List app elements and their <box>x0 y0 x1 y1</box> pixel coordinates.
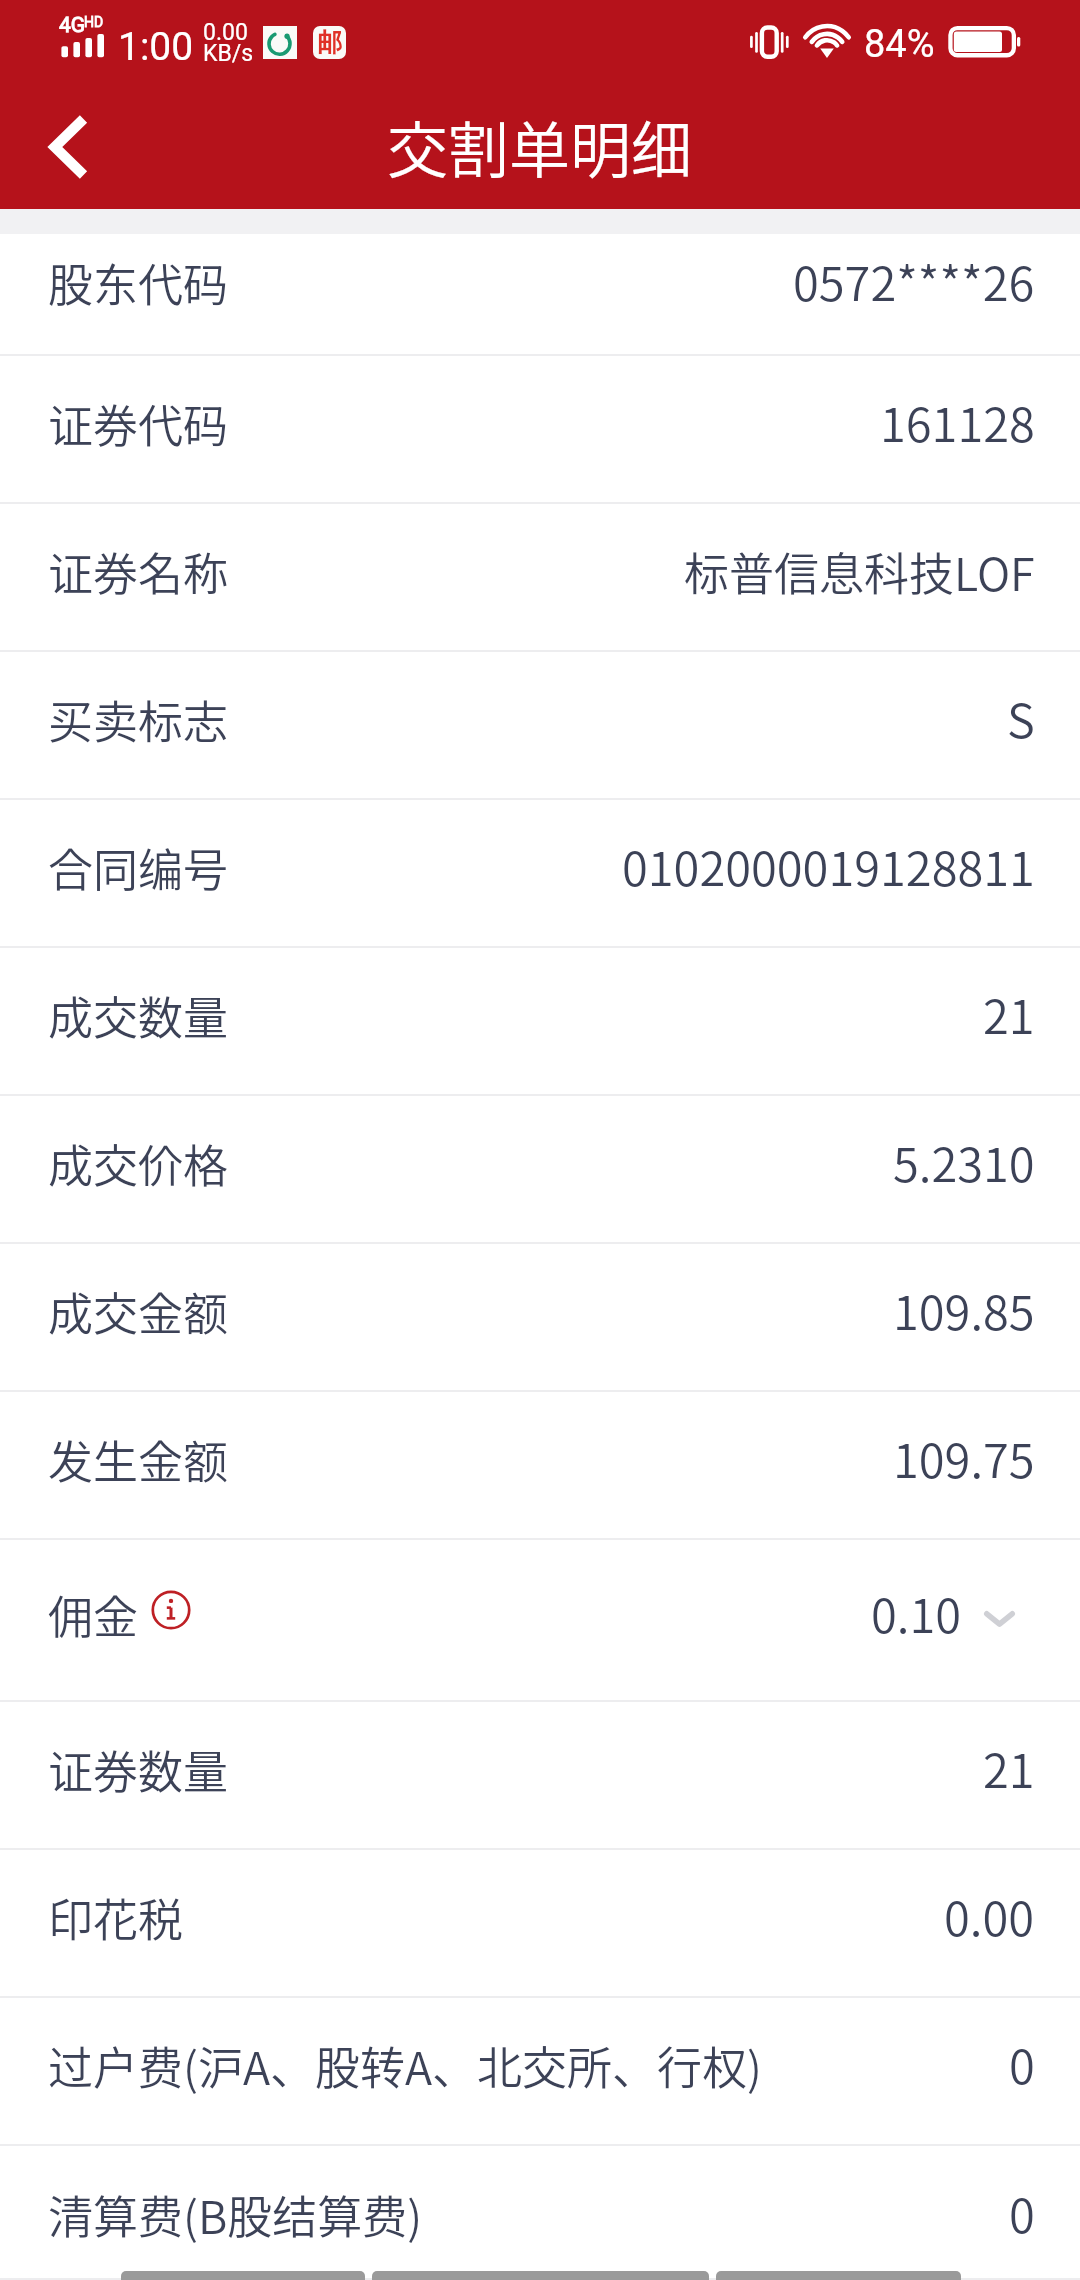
button[interactable]: 合同编号 <box>0 800 1080 948</box>
button[interactable]: 买卖标志 <box>0 652 1080 800</box>
staticText: 买卖标志 <box>48 687 229 752</box>
staticText: 清算费(B股结算费) <box>48 2182 423 2247</box>
button[interactable]: 成交金额 <box>0 1244 1080 1392</box>
staticText: 0.00 <box>944 1881 1035 1949</box>
button[interactable]: 发生金额 <box>0 1392 1080 1540</box>
staticText: KB/s <box>203 40 254 67</box>
button[interactable]: 证券名称 <box>0 504 1080 652</box>
staticText: 印花税 <box>48 1885 184 1950</box>
button[interactable]: 过户费(沪A、股转A、北交所、行权) <box>0 1998 1080 2146</box>
staticText: 161128 <box>880 387 1035 455</box>
staticText: 109.75 <box>893 1423 1035 1491</box>
staticText: 标普信息科技LOF <box>684 539 1035 604</box>
staticText: 成交价格 <box>48 1131 229 1196</box>
staticText: 21 <box>983 1733 1035 1801</box>
staticText: 交割单明细 <box>387 102 693 190</box>
staticText: 84% <box>864 22 935 67</box>
button[interactable]: 成交数量 <box>0 948 1080 1096</box>
staticText: 4G <box>59 13 86 38</box>
staticText: 邮 <box>317 27 342 58</box>
staticText: 0.00 <box>203 19 248 46</box>
button[interactable]: 成交价格 <box>0 1096 1080 1244</box>
staticText: 证券数量 <box>48 1737 229 1802</box>
staticText: 0102000019128811 <box>622 831 1035 899</box>
staticText: 1:00 <box>118 24 194 70</box>
staticText: 证券代码 <box>48 391 229 456</box>
staticText: 过户费(沪A、股转A、北交所、行权) <box>48 2033 762 2098</box>
staticText: HD <box>84 14 104 30</box>
button[interactable]: 证券数量 <box>0 1702 1080 1850</box>
staticText: 5.2310 <box>893 1127 1035 1195</box>
staticText: 0 <box>1009 2178 1035 2246</box>
staticText: 成交数量 <box>48 983 229 1048</box>
button[interactable]: 佣金 <box>0 1540 1080 1702</box>
staticText: 21 <box>983 979 1035 1047</box>
staticText: 成交金额 <box>48 1279 229 1344</box>
staticText: S <box>1007 683 1035 751</box>
staticText: 0572****26 <box>793 246 1035 314</box>
staticText: 109.85 <box>893 1275 1035 1343</box>
button[interactable]: 印花税 <box>0 1850 1080 1998</box>
staticText: 发生金额 <box>48 1427 229 1492</box>
staticText: 证券名称 <box>48 539 229 604</box>
button[interactable]: 证券代码 <box>0 356 1080 504</box>
staticText: 佣金 <box>48 1582 139 1647</box>
staticText: 0 <box>1009 2029 1035 2097</box>
button[interactable]: Back <box>0 90 130 209</box>
button[interactable]: 清算费(B股结算费) <box>0 2146 1080 2280</box>
button[interactable]: 股东代码 <box>0 234 1080 356</box>
staticText: 合同编号 <box>48 835 229 900</box>
staticText: 股东代码 <box>48 250 229 315</box>
staticText: 0.10 <box>871 1578 962 1646</box>
